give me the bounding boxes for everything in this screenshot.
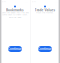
staticText: Bookmarks bbox=[6, 8, 24, 12]
staticText: Continue bbox=[38, 47, 52, 51]
staticText: Trade Values bbox=[34, 8, 55, 12]
staticText: Save the pages you like and bbox=[1, 11, 28, 14]
staticText: 9:41 bbox=[2, 0, 6, 3]
staticText: come back to them later. bbox=[2, 13, 28, 16]
button[interactable]: Continue bbox=[38, 46, 52, 52]
button[interactable]: Continue bbox=[8, 46, 22, 52]
staticText: Continue bbox=[8, 47, 22, 51]
staticText: Track the market. bbox=[36, 11, 54, 14]
staticText: 9:41 bbox=[32, 0, 36, 3]
staticText: Skip for now bbox=[8, 15, 21, 19]
